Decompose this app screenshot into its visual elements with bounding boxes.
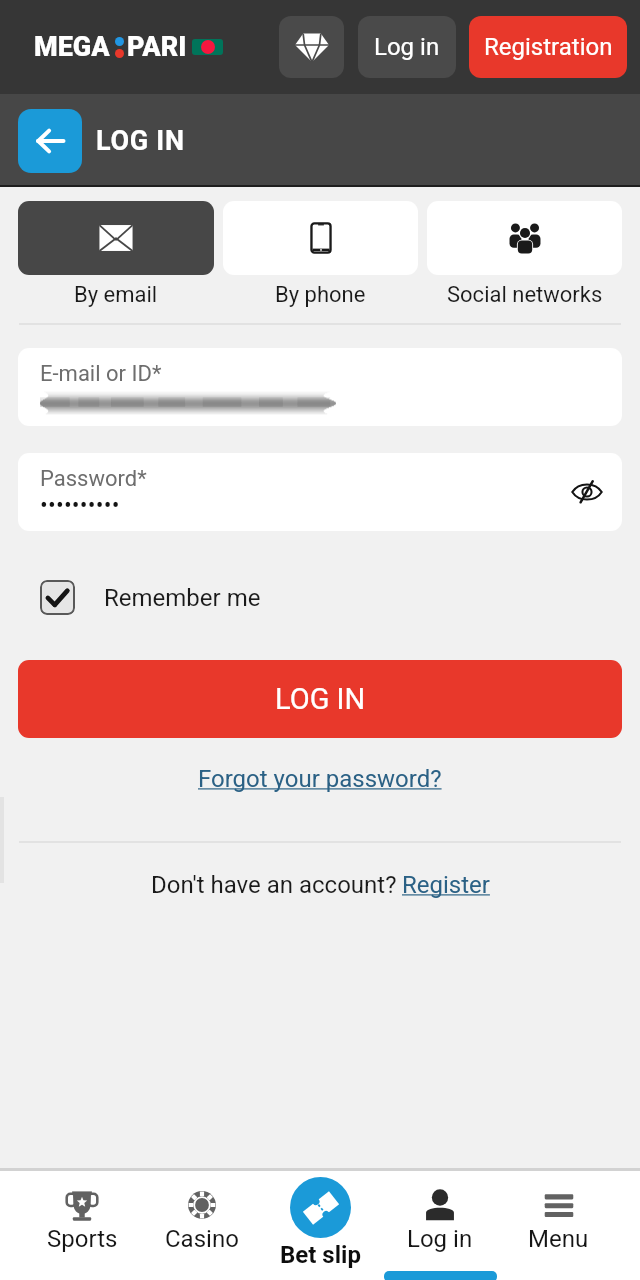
- button[interactable]: LOG IN: [18, 660, 622, 738]
- staticText: Casino: [165, 1225, 239, 1253]
- button[interactable]: Log in: [380, 1171, 499, 1280]
- button[interactable]: Casino: [142, 1171, 261, 1280]
- staticText: By phone: [275, 282, 366, 308]
- button[interactable]: Social networks: [427, 201, 622, 308]
- staticText: By email: [74, 282, 158, 308]
- staticText: Remember me: [104, 584, 261, 612]
- staticText: Password*: [40, 466, 147, 492]
- button[interactable]: Remember me: [40, 580, 261, 615]
- button[interactable]: By email: [18, 201, 214, 308]
- staticText: Log in: [407, 1225, 473, 1253]
- button[interactable]: Menu: [499, 1171, 618, 1280]
- button[interactable]: Registration: [469, 16, 627, 78]
- button[interactable]: Password*: [18, 453, 622, 531]
- staticText: Register: [402, 871, 490, 899]
- button[interactable]: Bet slip: [261, 1171, 380, 1280]
- staticText: Log in: [374, 33, 440, 61]
- button[interactable]: Register: [402, 871, 490, 899]
- staticText: MEGA: [34, 31, 110, 63]
- staticText: E-mail or ID*: [40, 361, 162, 387]
- button[interactable]: Show password: [562, 467, 612, 517]
- staticText: Registration: [484, 33, 613, 61]
- staticText: PARI: [127, 31, 187, 63]
- button[interactable]: Forgot your password?: [198, 765, 442, 793]
- button[interactable]: Back: [18, 109, 82, 173]
- staticText: Sports: [47, 1225, 118, 1253]
- button[interactable]: VIP: [279, 16, 344, 78]
- staticText: LOG IN: [96, 125, 185, 157]
- button[interactable]: E-mail or ID*: [18, 348, 622, 426]
- staticText: Bet slip: [280, 1241, 361, 1269]
- staticText: ••••••••••: [40, 492, 120, 519]
- button[interactable]: By phone: [223, 201, 418, 308]
- staticText: Don't have an account?: [151, 871, 397, 899]
- button[interactable]: Log in: [358, 16, 456, 78]
- staticText: Social networks: [447, 282, 603, 308]
- staticText: Menu: [528, 1225, 589, 1253]
- staticText: Forgot your password?: [198, 765, 442, 793]
- button[interactable]: Sports: [22, 1171, 142, 1280]
- staticText: LOG IN: [275, 682, 366, 716]
